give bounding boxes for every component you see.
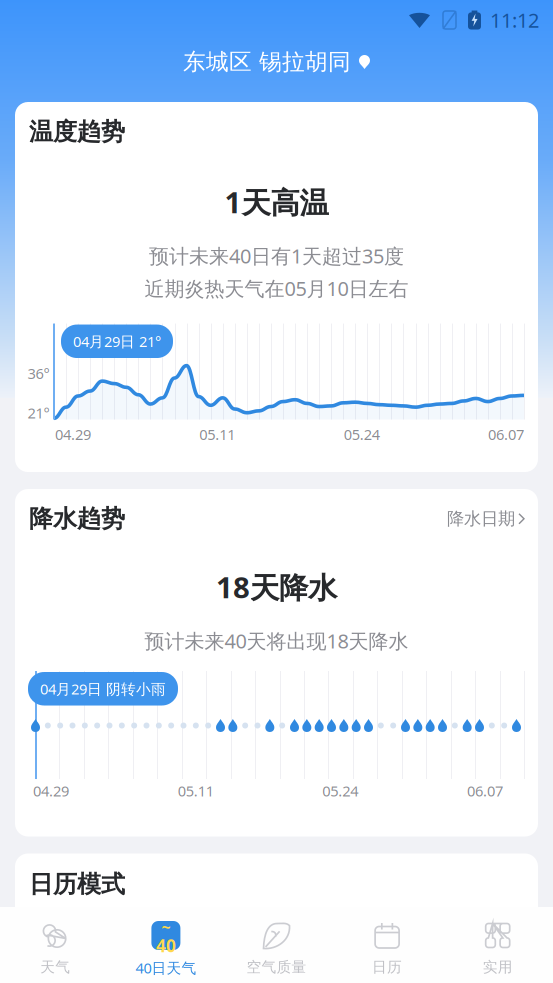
staticText: 预计未来40天将出现18天降水 bbox=[144, 627, 408, 654]
staticText: 05.24 bbox=[322, 781, 358, 800]
staticText: 05.24 bbox=[344, 425, 380, 444]
staticText: 近期炎热天气在05月10日左右 bbox=[144, 275, 408, 302]
staticText: ~ bbox=[161, 916, 170, 937]
staticText: 1天高温 bbox=[224, 182, 328, 221]
staticText: 温度趋势 bbox=[29, 117, 125, 146]
staticText: 降水日期 bbox=[447, 508, 515, 529]
staticText: 05.11 bbox=[199, 425, 235, 444]
staticText: 40日天气 bbox=[135, 958, 196, 977]
staticText: 11:12 bbox=[490, 7, 539, 33]
button[interactable]: 降水日期 bbox=[447, 508, 524, 529]
staticText: 36° bbox=[27, 364, 49, 383]
staticText: 降水趋势 bbox=[29, 504, 125, 533]
staticText: 日历模式 bbox=[29, 869, 125, 899]
staticText: 预计未来40日有1天超过35度 bbox=[149, 242, 404, 269]
staticText: 日历 bbox=[372, 958, 402, 976]
button[interactable]: ~ bbox=[111, 907, 221, 983]
staticText: 06.07 bbox=[467, 781, 503, 800]
button[interactable]: 实用 bbox=[442, 907, 553, 983]
button[interactable]: 空气质量 bbox=[221, 907, 332, 983]
button[interactable]: 日历 bbox=[332, 907, 442, 983]
staticText: 04.29 bbox=[33, 781, 69, 800]
staticText: 06.07 bbox=[488, 425, 524, 444]
staticText: 05.11 bbox=[178, 781, 214, 800]
staticText: 实用 bbox=[483, 958, 513, 976]
staticText: 40 bbox=[156, 934, 176, 957]
staticText: 18天降水 bbox=[216, 567, 337, 606]
staticText: 东城区 锡拉胡同 bbox=[183, 48, 351, 76]
button[interactable]: 东城区 锡拉胡同 bbox=[0, 40, 553, 84]
staticText: 21° bbox=[27, 403, 49, 423]
button[interactable]: 天气 bbox=[0, 907, 111, 983]
staticText: 04月29日 21° bbox=[73, 332, 161, 351]
staticText: 04.29 bbox=[55, 425, 91, 444]
staticText: 天气 bbox=[40, 958, 70, 976]
staticText: 空气质量 bbox=[246, 958, 306, 976]
staticText: 04月29日 阴转小雨 bbox=[40, 679, 166, 698]
